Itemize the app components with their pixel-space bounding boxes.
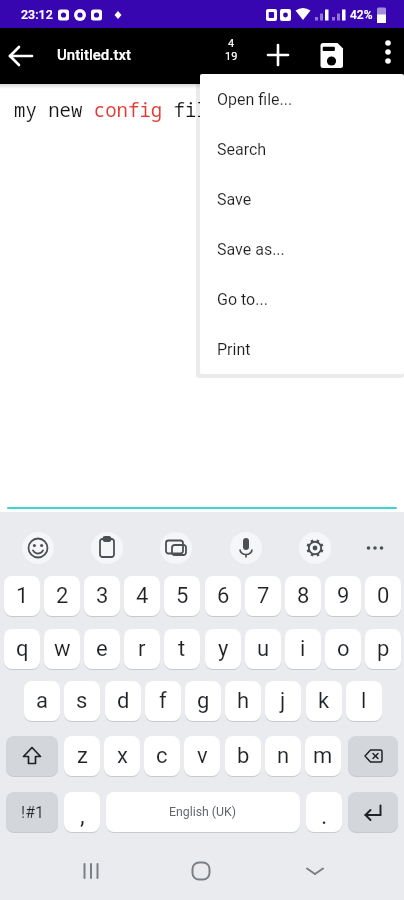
button[interactable]: q [4, 629, 40, 669]
button[interactable]: b [225, 736, 261, 776]
button[interactable] [178, 848, 224, 894]
staticText: Search [217, 140, 267, 159]
button[interactable] [87, 526, 127, 566]
staticText: 8 [297, 583, 310, 609]
button[interactable]: 8 [285, 576, 321, 616]
staticText: 3 [96, 583, 109, 609]
button[interactable] [295, 526, 335, 566]
staticText: v [197, 743, 208, 769]
button[interactable] [292, 848, 338, 894]
button[interactable] [4, 39, 38, 73]
button[interactable]: 5 [164, 576, 200, 616]
button[interactable]: f [145, 681, 181, 721]
staticText: 2 [56, 583, 69, 609]
button[interactable] [18, 526, 58, 566]
button[interactable]: i [285, 629, 321, 669]
staticText: , [80, 802, 85, 830]
button[interactable]: a [24, 681, 60, 721]
button[interactable]: s [64, 681, 100, 721]
staticText: g [197, 688, 210, 714]
button[interactable] [68, 848, 114, 894]
button[interactable]: w [44, 629, 80, 669]
button[interactable]: x [104, 736, 140, 776]
staticText: 23:12 [21, 7, 53, 22]
button[interactable] [348, 736, 398, 776]
button[interactable]: English (UK) [106, 792, 300, 832]
staticText: y [218, 636, 229, 662]
staticText: 0 [377, 583, 390, 609]
button[interactable]: o [325, 629, 361, 669]
staticText: Open file... [217, 90, 293, 109]
button[interactable]: 2 [44, 576, 80, 616]
staticText: 1 [16, 583, 29, 609]
button[interactable]: j [265, 681, 301, 721]
button[interactable]: u [245, 629, 281, 669]
button[interactable]: Search [200, 124, 404, 174]
button[interactable]: k [306, 681, 342, 721]
staticText: c [156, 743, 168, 769]
button[interactable] [261, 38, 295, 72]
staticText: o [337, 636, 350, 662]
button[interactable]: v [184, 736, 220, 776]
staticText: . [321, 802, 328, 830]
button[interactable]: Open file... [200, 74, 404, 124]
button[interactable] [226, 526, 266, 566]
button[interactable]: 3 [84, 576, 120, 616]
staticText: 42% [350, 8, 373, 22]
button[interactable]: 6 [205, 576, 241, 616]
button[interactable]: 0 [365, 576, 401, 616]
staticText: f [159, 688, 167, 714]
button[interactable]: p [365, 629, 401, 669]
button[interactable] [156, 526, 196, 566]
button[interactable]: Go to... [200, 274, 404, 324]
staticText: k [318, 688, 330, 714]
staticText: Save as... [217, 240, 285, 259]
staticText: w [54, 636, 71, 662]
button[interactable]: 7 [245, 576, 281, 616]
staticText: my new config file [14, 97, 220, 123]
button[interactable] [315, 38, 349, 72]
button[interactable]: Print [200, 324, 404, 374]
button[interactable] [355, 526, 395, 566]
button[interactable]: z [64, 736, 100, 776]
staticText: 9 [337, 583, 350, 609]
staticText: English (UK) [169, 805, 237, 819]
button[interactable]: 9 [325, 576, 361, 616]
button[interactable]: n [265, 736, 301, 776]
button[interactable] [6, 736, 58, 776]
button[interactable]: e [84, 629, 120, 669]
staticText: s [76, 688, 88, 714]
staticText: Go to... [217, 290, 268, 309]
button[interactable]: l [346, 681, 382, 721]
staticText: z [77, 743, 88, 769]
staticText: i [300, 636, 306, 662]
staticText: 4 [136, 583, 149, 609]
staticText: 5 [176, 583, 189, 609]
button[interactable]: g [185, 681, 221, 721]
staticText: !#1 [21, 803, 44, 822]
button[interactable]: Save as... [200, 224, 404, 274]
button[interactable]: t [164, 629, 200, 669]
button[interactable]: d [105, 681, 141, 721]
button[interactable] [371, 35, 404, 69]
button[interactable]: 1 [4, 576, 40, 616]
staticText: j [280, 688, 286, 714]
staticText: 19 [225, 50, 238, 63]
button[interactable]: y [205, 629, 241, 669]
button[interactable] [348, 792, 398, 832]
button[interactable]: Save [200, 174, 404, 224]
staticText: q [16, 636, 29, 662]
staticText: t [178, 636, 186, 662]
button[interactable]: m [305, 736, 341, 776]
button[interactable]: h [225, 681, 261, 721]
staticText: n [277, 743, 290, 769]
staticText: l [361, 688, 367, 714]
button[interactable]: 4 [124, 576, 160, 616]
button[interactable]: r [124, 629, 160, 669]
staticText: a [36, 688, 48, 714]
button[interactable]: , [64, 792, 100, 832]
staticText: x [117, 743, 128, 769]
button[interactable]: . [306, 792, 342, 832]
button[interactable]: c [144, 736, 180, 776]
button[interactable]: !#1 [6, 792, 58, 832]
